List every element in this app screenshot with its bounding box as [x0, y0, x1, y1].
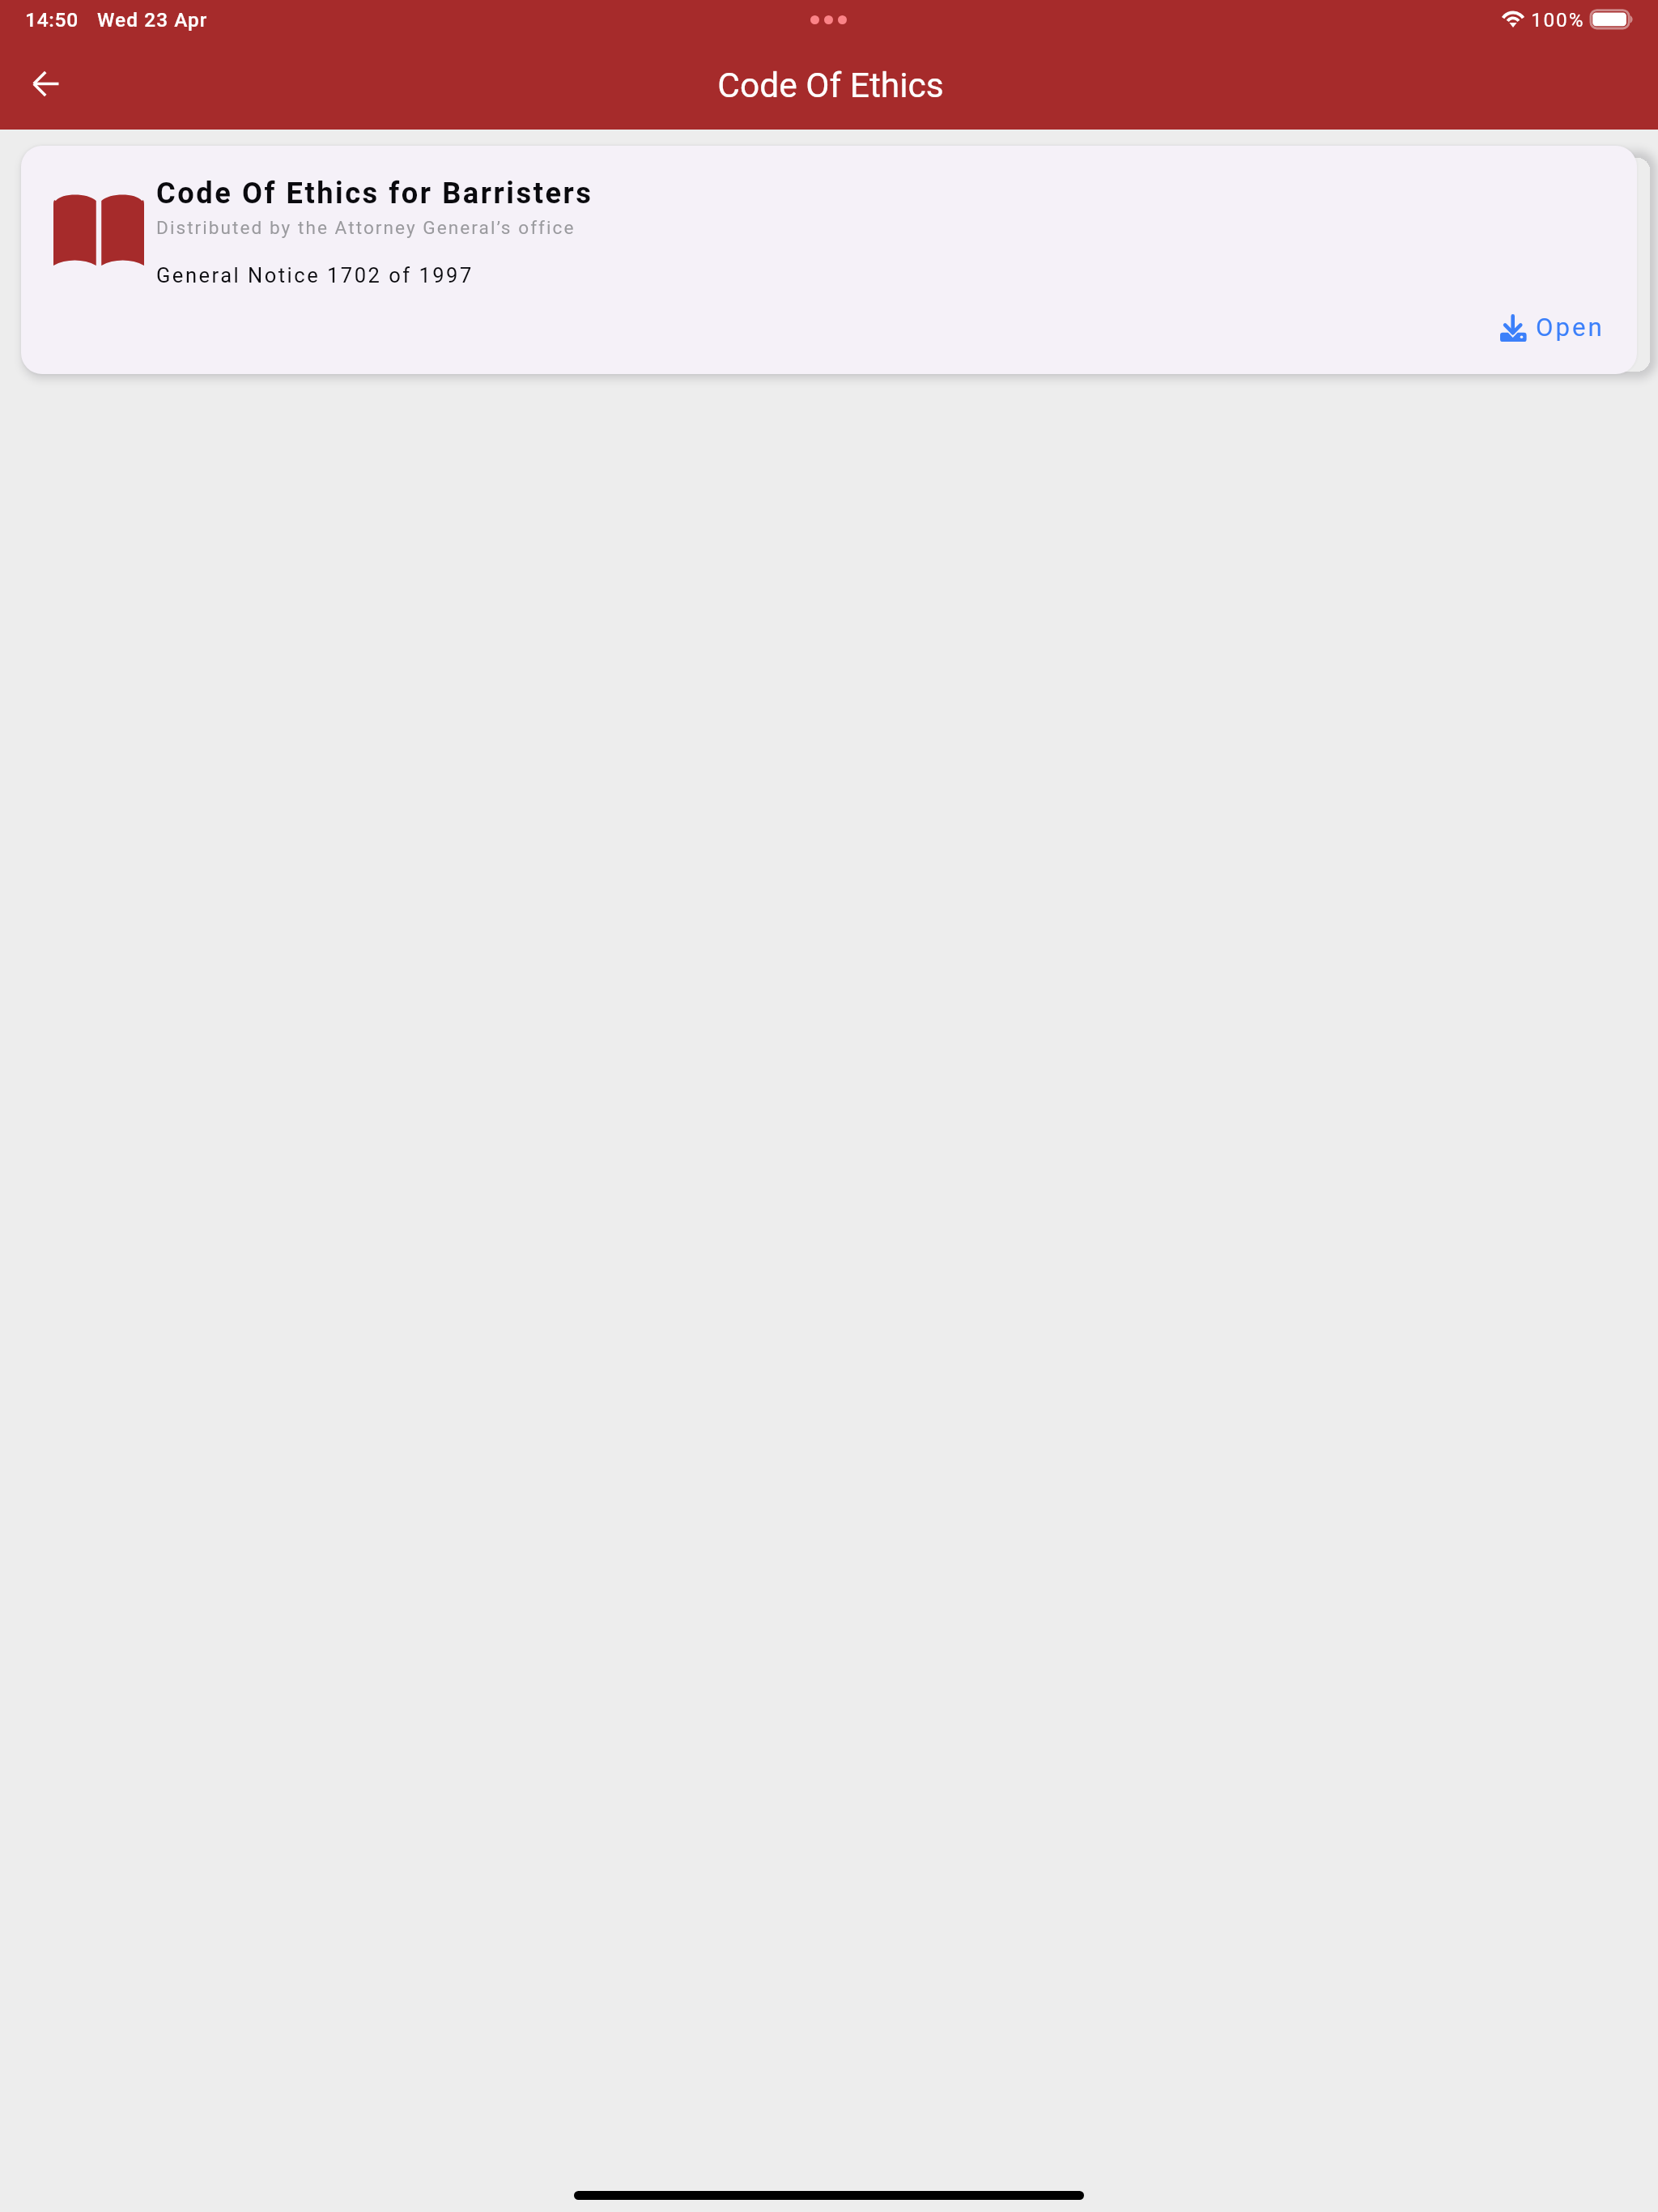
button[interactable]: Open [1490, 301, 1626, 351]
button[interactable]: Back [10, 49, 81, 120]
staticText: 14:50 [25, 8, 79, 32]
button[interactable]: Code Of Ethics for Barristers [21, 146, 1637, 374]
staticText: Open [1536, 313, 1605, 342]
staticText: General Notice 1702 of 1997 [156, 263, 474, 287]
staticText: Code Of Ethics [2, 66, 1658, 106]
staticText: Code Of Ethics for Barristers [156, 176, 593, 210]
staticText: Distributed by the Attorney General’s of… [156, 217, 576, 238]
staticText: Wed 23 Apr [97, 8, 208, 31]
staticText: 100% [1531, 8, 1585, 31]
